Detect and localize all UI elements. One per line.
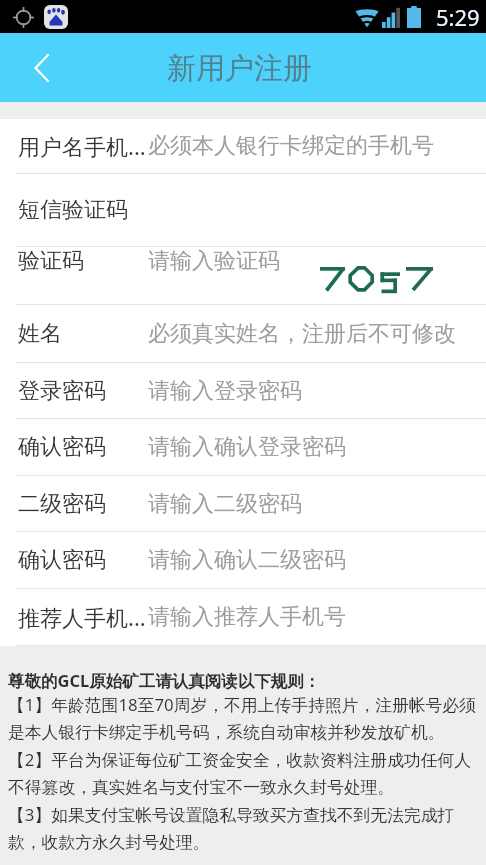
staticText: 短信验证码 bbox=[18, 196, 128, 224]
staticText: 【1】年龄范围18至70周岁，不用上传手持照片，注册帐号必须是本人银行卡绑定手机… bbox=[8, 693, 484, 853]
button[interactable]: 用户名手机... bbox=[0, 119, 486, 173]
button[interactable]: 确认密码 bbox=[0, 532, 486, 588]
button[interactable]: Back bbox=[13, 40, 69, 96]
staticText: 必须本人银行卡绑定的手机号 bbox=[148, 132, 434, 160]
staticText: 尊敬的GCL原始矿工请认真阅读以下规则： bbox=[8, 669, 321, 692]
staticText: 请输入验证码 bbox=[148, 247, 280, 275]
button[interactable]: 确认密码 bbox=[0, 419, 486, 475]
staticText: 确认密码 bbox=[18, 433, 106, 461]
staticText: 请输入二级密码 bbox=[148, 490, 302, 518]
button[interactable]: 登录密码 bbox=[0, 363, 486, 418]
button[interactable]: 验证码 bbox=[0, 247, 486, 304]
button[interactable]: 推荐人手机... bbox=[0, 589, 486, 645]
staticText: 请输入登录密码 bbox=[148, 377, 302, 405]
staticText: 登录密码 bbox=[18, 377, 106, 405]
staticText: 用户名手机... bbox=[18, 131, 146, 161]
staticText: 姓名 bbox=[18, 320, 62, 348]
staticText: 验证码 bbox=[18, 247, 84, 275]
staticText: 请输入确认登录密码 bbox=[148, 433, 346, 461]
staticText: 请输入推荐人手机号 bbox=[148, 603, 346, 631]
staticText: 必须真实姓名，注册后不可修改 bbox=[148, 320, 456, 348]
staticText: 确认密码 bbox=[18, 546, 106, 574]
staticText: 新用户注册 bbox=[167, 50, 312, 87]
staticText: 二级密码 bbox=[18, 490, 106, 518]
button[interactable]: 二级密码 bbox=[0, 476, 486, 531]
staticText: 请输入确认二级密码 bbox=[148, 546, 346, 574]
button[interactable]: 姓名 bbox=[0, 305, 486, 362]
staticText: 5:29 bbox=[436, 2, 480, 32]
button[interactable]: 短信验证码 bbox=[0, 174, 486, 246]
staticText: 推荐人手机... bbox=[18, 602, 146, 632]
